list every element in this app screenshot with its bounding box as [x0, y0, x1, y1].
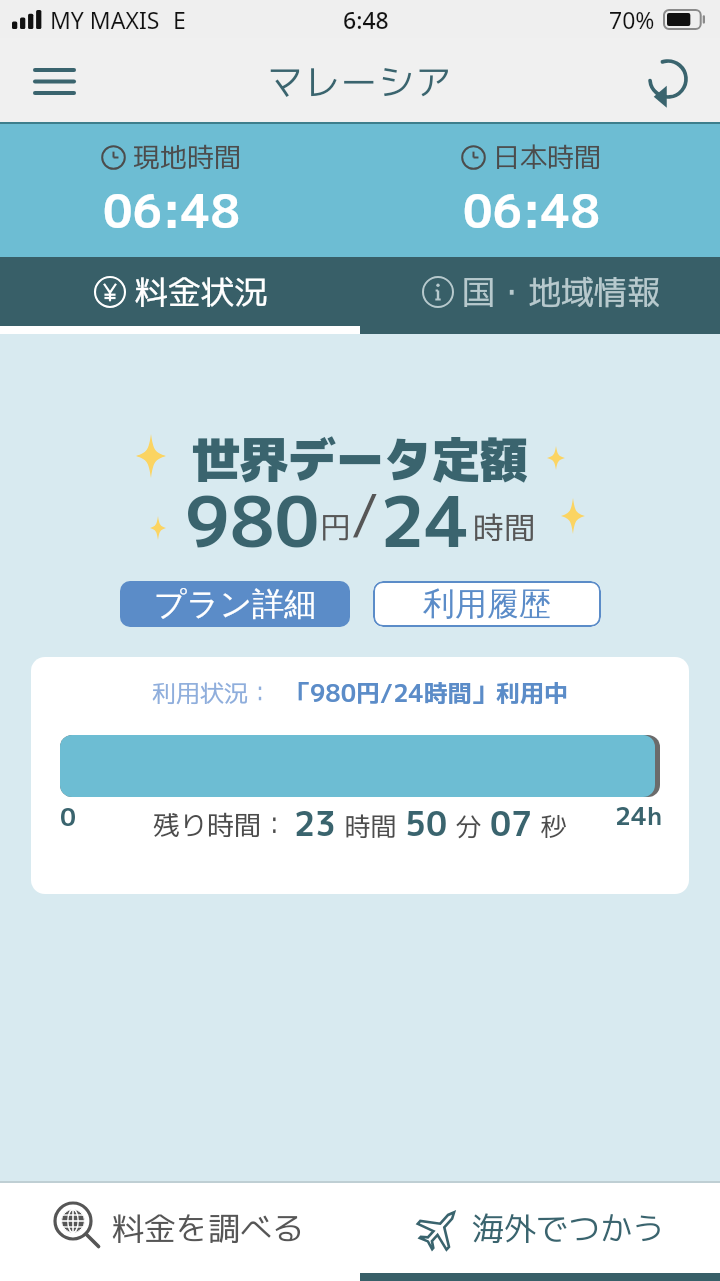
staticText: 時間 [337, 808, 405, 844]
button[interactable]: 料金を調べる [0, 1183, 360, 1273]
button[interactable]: 利用履歴 [373, 581, 601, 627]
staticText: 円 [320, 506, 351, 549]
button[interactable]: 海外でつかう [360, 1183, 720, 1273]
button[interactable]: Refresh [640, 54, 694, 108]
staticText: 24h [615, 798, 663, 833]
staticText: 料金状況 [135, 269, 267, 315]
button[interactable]: 料金状況 [0, 257, 360, 326]
staticText: 06:48 [463, 179, 600, 243]
staticText: 時間 [473, 506, 535, 549]
staticText: E [173, 4, 186, 35]
button[interactable]: 国・地域情報 [360, 257, 720, 326]
staticText: 07 [490, 801, 533, 847]
staticText: 6:48 [343, 4, 389, 35]
staticText: 利用状況： [152, 676, 272, 709]
staticText: 23 [294, 801, 337, 847]
staticText: 秒 [533, 808, 567, 844]
staticText: 日本時間 [493, 138, 601, 176]
staticText: 残り時間： [153, 806, 288, 844]
staticText: 現地時間 [133, 138, 241, 176]
staticText: マレーシア [267, 56, 453, 106]
staticText: 海外でつかう [472, 1206, 665, 1251]
staticText: 0 [60, 799, 77, 834]
staticText: プラン詳細 [154, 584, 317, 624]
staticText: 利用履歴 [423, 584, 551, 624]
staticText: 50 [405, 801, 448, 847]
staticText: MY MAXIS [50, 4, 160, 35]
staticText: 料金を調べる [112, 1206, 305, 1251]
staticText: 分 [448, 808, 490, 844]
staticText: 980 [185, 472, 320, 555]
staticText: 「980円/24時間」利用中 [286, 676, 568, 709]
staticText: 06:48 [103, 179, 240, 243]
staticText: 世界データ定額 [192, 425, 529, 492]
staticText: / [351, 475, 380, 553]
button[interactable]: Menu [25, 52, 83, 110]
staticText: 70% [609, 4, 655, 35]
staticText: 国・地域情報 [462, 269, 660, 315]
staticText: 24 [380, 472, 470, 555]
button[interactable]: プラン詳細 [120, 581, 350, 627]
